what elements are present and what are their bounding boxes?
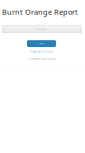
button[interactable]: Blogger: [45, 57, 56, 60]
button[interactable]: Home: [27, 40, 56, 47]
staticText: No posts.: [37, 27, 47, 30]
staticText: Powered by: [29, 57, 45, 60]
staticText: Home: [39, 42, 44, 45]
staticText: Blogger: [45, 57, 56, 60]
staticText: View web version: [30, 50, 54, 54]
button[interactable]: View web version: [30, 50, 54, 54]
staticText: Burnt Orange Report: [2, 7, 78, 17]
